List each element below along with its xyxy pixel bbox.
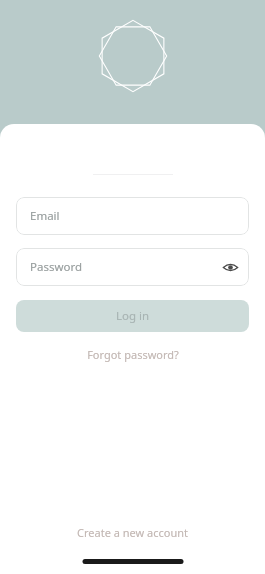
button[interactable]: Log in	[16, 300, 249, 332]
button[interactable]: Password	[16, 248, 249, 286]
staticText: Email	[30, 208, 60, 224]
button[interactable]: Forgot password?	[77, 344, 189, 365]
button[interactable]: Show password	[220, 257, 240, 277]
button[interactable]: Email	[16, 197, 249, 235]
staticText: Password	[30, 259, 83, 275]
staticText: Create a new account	[77, 525, 188, 540]
button[interactable]: Create a new account	[65, 521, 200, 544]
staticText: Log in	[116, 308, 150, 324]
staticText: Forgot password?	[87, 347, 179, 362]
